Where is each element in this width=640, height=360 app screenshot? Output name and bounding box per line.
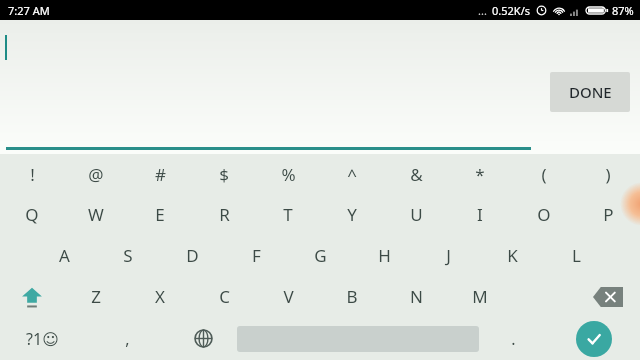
button[interactable]: J bbox=[416, 235, 480, 276]
button[interactable]: Delete bbox=[576, 276, 640, 317]
button[interactable]: B bbox=[320, 276, 384, 317]
button[interactable]: Shift bbox=[0, 276, 64, 317]
staticText: DONE bbox=[569, 82, 612, 102]
staticText: H bbox=[378, 244, 391, 267]
button[interactable]: X bbox=[128, 276, 192, 317]
button[interactable]: ?1☺ bbox=[0, 317, 85, 360]
staticText: I bbox=[477, 203, 483, 226]
staticText: C bbox=[219, 285, 230, 308]
button[interactable]: Y bbox=[320, 194, 384, 235]
button[interactable]: M bbox=[448, 276, 512, 317]
staticText: . bbox=[511, 328, 516, 350]
staticText: $ bbox=[219, 163, 229, 186]
button[interactable]: # bbox=[128, 154, 192, 194]
button[interactable]: Change language bbox=[169, 317, 237, 360]
button[interactable]: O bbox=[512, 194, 576, 235]
button[interactable]: N bbox=[384, 276, 448, 317]
button[interactable]: F bbox=[224, 235, 288, 276]
staticText: W bbox=[88, 203, 104, 226]
staticText: , bbox=[125, 328, 130, 350]
button[interactable]: T bbox=[256, 194, 320, 235]
button[interactable]: DONE bbox=[0, 20, 640, 154]
staticText: E bbox=[155, 203, 165, 226]
button[interactable]: P bbox=[576, 194, 640, 235]
button[interactable]: W bbox=[64, 194, 128, 235]
button[interactable]: $ bbox=[192, 154, 256, 194]
staticText: A bbox=[59, 244, 70, 267]
staticText: ... bbox=[478, 3, 487, 18]
button[interactable]: U bbox=[384, 194, 448, 235]
button[interactable]: * bbox=[448, 154, 512, 194]
staticText: ( bbox=[541, 163, 547, 186]
button[interactable]: % bbox=[256, 154, 320, 194]
button[interactable]: @ bbox=[64, 154, 128, 194]
staticText: P bbox=[603, 203, 614, 226]
button[interactable]: H bbox=[352, 235, 416, 276]
staticText: F bbox=[252, 244, 261, 267]
staticText: % bbox=[281, 163, 296, 186]
button[interactable]: ( bbox=[512, 154, 576, 194]
staticText: Q bbox=[25, 203, 39, 226]
button[interactable]: I bbox=[448, 194, 512, 235]
button[interactable]: ! bbox=[0, 154, 64, 194]
button[interactable]: Q bbox=[0, 194, 64, 235]
staticText: U bbox=[410, 203, 423, 226]
staticText: M bbox=[472, 285, 488, 308]
staticText: @ bbox=[88, 163, 104, 186]
staticText: N bbox=[410, 285, 423, 308]
button[interactable]: E bbox=[128, 194, 192, 235]
button[interactable]: D bbox=[160, 235, 224, 276]
staticText: 0.52K/s bbox=[492, 3, 530, 18]
button[interactable]: K bbox=[480, 235, 544, 276]
staticText: & bbox=[410, 163, 423, 186]
staticText: 87% bbox=[612, 3, 634, 18]
button[interactable]: V bbox=[256, 276, 320, 317]
staticText: L bbox=[572, 244, 581, 267]
button[interactable]: DONE bbox=[550, 72, 630, 112]
button[interactable]: R bbox=[192, 194, 256, 235]
staticText: D bbox=[186, 244, 199, 267]
staticText: ) bbox=[605, 163, 611, 186]
button[interactable]: G bbox=[288, 235, 352, 276]
staticText: O bbox=[537, 203, 551, 226]
button[interactable]: L bbox=[544, 235, 608, 276]
staticText: 7:27 AM bbox=[8, 3, 50, 18]
staticText: K bbox=[507, 244, 518, 267]
staticText: S bbox=[123, 244, 133, 267]
staticText: # bbox=[155, 163, 166, 186]
staticText: T bbox=[283, 203, 293, 226]
staticText: Z bbox=[91, 285, 101, 308]
staticText: ! bbox=[30, 163, 35, 186]
staticText: Y bbox=[347, 203, 357, 226]
staticText: ?1☺ bbox=[26, 328, 59, 350]
button[interactable]: Enter bbox=[576, 321, 612, 357]
staticText: V bbox=[283, 285, 294, 308]
staticText: B bbox=[346, 285, 358, 308]
button[interactable]: ) bbox=[576, 154, 640, 194]
staticText: ^ bbox=[347, 163, 357, 186]
button[interactable]: Z bbox=[64, 276, 128, 317]
staticText: J bbox=[446, 244, 451, 267]
button[interactable]: ^ bbox=[320, 154, 384, 194]
staticText: R bbox=[219, 203, 230, 226]
staticText: * bbox=[475, 163, 485, 186]
staticText: X bbox=[155, 285, 165, 308]
button[interactable]: , bbox=[85, 317, 169, 360]
button[interactable]: S bbox=[96, 235, 160, 276]
button[interactable]: C bbox=[192, 276, 256, 317]
button[interactable]: A bbox=[32, 235, 96, 276]
button[interactable]: . bbox=[479, 317, 547, 360]
staticText: G bbox=[314, 244, 327, 267]
button[interactable]: & bbox=[384, 154, 448, 194]
